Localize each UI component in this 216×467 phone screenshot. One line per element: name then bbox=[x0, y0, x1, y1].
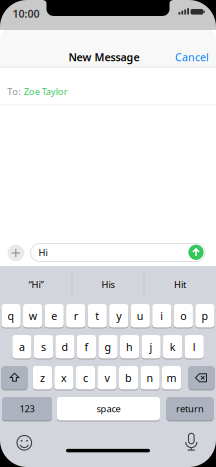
button[interactable]: return bbox=[166, 396, 213, 421]
staticText: o bbox=[180, 309, 186, 323]
button[interactable]: w bbox=[23, 303, 42, 328]
staticText: t bbox=[95, 309, 99, 323]
staticText: q bbox=[8, 309, 15, 323]
button[interactable]: o bbox=[174, 303, 193, 328]
button[interactable]: n bbox=[140, 365, 160, 390]
button[interactable]: Cancel bbox=[175, 50, 209, 64]
staticText: Cancel bbox=[175, 50, 209, 64]
button[interactable]: Send bbox=[188, 245, 204, 260]
button[interactable]: f bbox=[77, 334, 96, 359]
staticText: w bbox=[29, 309, 37, 323]
button[interactable]: v bbox=[97, 365, 117, 390]
staticText: To: bbox=[7, 85, 21, 98]
staticText: space bbox=[96, 403, 120, 415]
staticText: f bbox=[84, 340, 88, 354]
staticText: h bbox=[126, 340, 133, 354]
button[interactable]: p bbox=[195, 303, 214, 328]
staticText: r bbox=[74, 309, 78, 323]
staticText: v bbox=[104, 371, 109, 385]
staticText: His bbox=[101, 278, 114, 291]
button[interactable]: s bbox=[34, 334, 53, 359]
staticText: b bbox=[125, 371, 132, 385]
button[interactable]: g bbox=[98, 334, 118, 359]
staticText: New Message bbox=[68, 50, 139, 64]
button[interactable]: His bbox=[73, 270, 143, 298]
staticText: “Hi” bbox=[28, 278, 43, 291]
button[interactable]: m bbox=[162, 365, 181, 390]
staticText: g bbox=[104, 340, 111, 354]
button[interactable]: y bbox=[109, 303, 128, 328]
staticText: return bbox=[176, 403, 204, 415]
button[interactable]: c bbox=[76, 365, 95, 390]
staticText: p bbox=[201, 309, 208, 323]
staticText: x bbox=[61, 371, 67, 385]
staticText: e bbox=[51, 309, 57, 323]
staticText: Hi bbox=[38, 246, 47, 259]
staticText: m bbox=[167, 371, 177, 385]
staticText: a bbox=[19, 340, 25, 354]
button[interactable]: z bbox=[33, 365, 52, 390]
button[interactable]: a bbox=[12, 334, 31, 359]
staticText: d bbox=[61, 340, 68, 354]
button[interactable]: space bbox=[57, 396, 160, 421]
button[interactable]: “Hi” bbox=[1, 270, 71, 298]
button[interactable]: Shift bbox=[1, 365, 27, 390]
staticText: s bbox=[41, 340, 46, 354]
button[interactable]: q bbox=[1, 303, 21, 328]
button[interactable]: Delete bbox=[188, 365, 214, 390]
staticText: u bbox=[137, 309, 144, 323]
staticText: k bbox=[170, 340, 176, 354]
button[interactable]: k bbox=[163, 334, 182, 359]
staticText: i bbox=[160, 309, 163, 323]
button[interactable]: t bbox=[88, 303, 107, 328]
button[interactable]: Hit bbox=[145, 270, 215, 298]
staticText: y bbox=[116, 309, 121, 323]
button[interactable]: Emoji bbox=[15, 434, 33, 452]
button[interactable]: Dictation bbox=[182, 432, 200, 452]
staticText: c bbox=[83, 371, 88, 385]
button[interactable]: l bbox=[185, 334, 204, 359]
button[interactable]: b bbox=[119, 365, 138, 390]
staticText: Zoe Taylor bbox=[24, 85, 68, 98]
staticText: z bbox=[40, 371, 45, 385]
button[interactable]: u bbox=[131, 303, 150, 328]
button[interactable]: d bbox=[55, 334, 75, 359]
button[interactable]: h bbox=[120, 334, 139, 359]
button[interactable]: i bbox=[152, 303, 171, 328]
button[interactable]: e bbox=[45, 303, 64, 328]
button[interactable]: Attach bbox=[7, 245, 24, 261]
staticText: 10:00 bbox=[12, 6, 39, 21]
button[interactable]: j bbox=[141, 334, 161, 359]
staticText: j bbox=[150, 340, 153, 354]
button[interactable]: 123 bbox=[2, 396, 52, 421]
staticText: l bbox=[193, 340, 196, 354]
staticText: n bbox=[147, 371, 154, 385]
staticText: Hit bbox=[174, 278, 186, 291]
staticText: 123 bbox=[19, 403, 34, 415]
button[interactable]: r bbox=[66, 303, 85, 328]
button[interactable]: x bbox=[54, 365, 73, 390]
